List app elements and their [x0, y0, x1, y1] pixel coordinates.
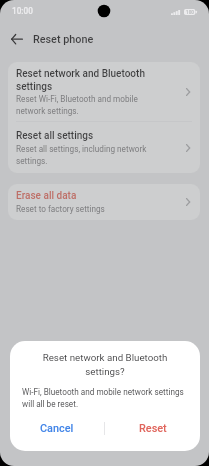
staticText: Reset Wi-Fi, Bluetooth and mobile networ…	[16, 94, 161, 116]
staticText: Reset all settings	[16, 130, 94, 142]
staticText: Cancel	[40, 422, 74, 435]
button[interactable]: Reset	[105, 417, 200, 439]
staticText: Reset network and Bluetooth settings	[16, 68, 161, 92]
staticText: Reset all settings, including network se…	[16, 144, 161, 166]
button[interactable]: Reset all settings	[8, 122, 200, 173]
button[interactable]: Erase all data	[8, 184, 200, 220]
staticText: Reset to factory settings	[16, 204, 105, 214]
staticText: Erase all data	[16, 190, 77, 202]
staticText: Reset phone	[33, 33, 94, 46]
button[interactable]: Back	[6, 28, 28, 50]
staticText: 100	[186, 10, 194, 15]
staticText: Reset	[139, 422, 167, 435]
button[interactable]: Reset network and Bluetooth settings	[8, 62, 200, 121]
staticText: 10:00	[12, 6, 33, 16]
staticText: Wi-Fi, Bluetooth and mobile network sett…	[22, 387, 188, 409]
staticText: Reset network and Bluetooth settings?	[24, 352, 186, 377]
button[interactable]: Cancel	[10, 417, 104, 439]
